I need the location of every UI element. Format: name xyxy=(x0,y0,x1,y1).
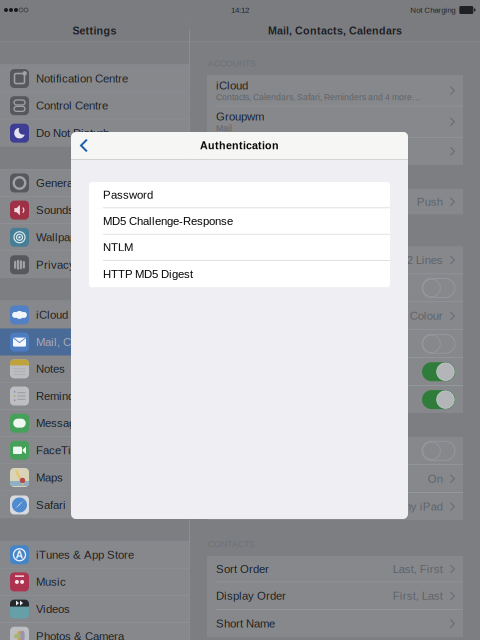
staticText: MAIL xyxy=(208,230,228,239)
button[interactable]: Wallpapers & Brightness xyxy=(0,224,189,251)
staticText: iTunes & App Store xyxy=(36,548,134,561)
staticText: ACCOUNTS xyxy=(208,59,256,68)
button[interactable]: Groupwm xyxy=(207,106,463,137)
staticText: Safari xyxy=(36,499,66,511)
staticText: Mail, Contacts, Calendars xyxy=(36,336,164,348)
button[interactable]: Sounds xyxy=(0,197,189,224)
staticText: Short Name xyxy=(216,617,275,630)
staticText: Sort Order xyxy=(216,563,269,575)
staticText: Contacts, Calendars, Safari, Reminders a… xyxy=(216,92,421,102)
button[interactable]: A xyxy=(0,541,189,569)
button[interactable]: Sort Order xyxy=(207,556,463,582)
button[interactable]: Privacy xyxy=(0,251,189,278)
staticText: Sent from my iPad xyxy=(351,500,443,513)
staticText: Reminders xyxy=(36,390,90,402)
staticText: Music xyxy=(36,576,66,588)
staticText: Fetch New Data xyxy=(216,195,295,208)
button[interactable]: General xyxy=(0,170,189,197)
button[interactable]: Load Remote Images xyxy=(207,358,463,385)
staticText: Videos xyxy=(36,603,70,615)
staticText: Preview xyxy=(216,254,257,266)
staticText: Settings xyxy=(72,25,116,37)
button[interactable]: Do Not Disturb xyxy=(0,120,189,147)
staticText: NTLM xyxy=(103,241,133,254)
button[interactable]: Organise By Thread xyxy=(207,386,463,413)
button[interactable]: Messages xyxy=(0,410,189,437)
staticText: Notification Centre xyxy=(36,72,128,85)
button[interactable]: Increase Quote Level xyxy=(207,465,463,492)
staticText: Push xyxy=(417,195,443,208)
staticText: 2 Lines xyxy=(407,254,443,266)
button[interactable]: Short Name xyxy=(207,610,463,637)
button[interactable]: iCloud xyxy=(207,75,463,106)
staticText: Photos & Camera xyxy=(36,630,124,640)
button[interactable]: Display Order xyxy=(207,582,463,609)
staticText: Authentication xyxy=(200,139,279,151)
button[interactable]: Preview xyxy=(207,246,463,274)
button[interactable]: Show To/Cc Label xyxy=(207,274,463,302)
staticText: Privacy xyxy=(36,258,75,271)
staticText: Do Not Disturb xyxy=(36,127,109,139)
button[interactable]: Reminders xyxy=(0,383,189,410)
button[interactable]: NTLM xyxy=(89,235,390,261)
staticText: Password xyxy=(103,188,153,201)
button[interactable]: Add Account xyxy=(207,138,463,165)
button[interactable]: Safari xyxy=(0,491,189,518)
button[interactable]: HTTP MD5 Digest xyxy=(89,261,390,287)
button[interactable]: MD5 Challenge-Response xyxy=(89,208,390,235)
button[interactable]: Maps xyxy=(0,464,189,491)
button[interactable]: Mail, Contacts, Calendars xyxy=(0,328,189,356)
staticText: Mail, Contacts, Calendars xyxy=(268,25,402,37)
staticText: A xyxy=(15,549,23,561)
staticText: Notes xyxy=(36,362,65,375)
button[interactable]: Photos & Camera xyxy=(0,623,189,640)
button[interactable]: Notification Centre xyxy=(0,65,189,92)
button[interactable]: Back xyxy=(71,132,115,159)
staticText: First, Last xyxy=(393,590,443,602)
staticText: Display Order xyxy=(216,590,286,602)
staticText: Last, First xyxy=(393,563,443,575)
staticText: Maps xyxy=(36,471,63,484)
button[interactable]: Control Centre xyxy=(0,92,189,120)
staticText: CONTACTS xyxy=(208,539,255,549)
staticText: General xyxy=(36,177,76,189)
button[interactable]: FaceTime xyxy=(0,437,189,464)
staticText: MD5 Challenge-Response xyxy=(103,215,233,227)
button[interactable]: Signature xyxy=(207,493,463,520)
staticText: 14:12 xyxy=(231,5,249,14)
staticText: HTTP MD5 Digest xyxy=(103,268,193,280)
staticText: Sounds xyxy=(36,204,74,216)
button[interactable]: Flag Style xyxy=(207,302,463,329)
button[interactable]: Ask Before Deleting xyxy=(207,330,463,357)
staticText: Messages xyxy=(36,417,87,429)
button[interactable]: Music xyxy=(0,569,189,596)
button[interactable]: Notes xyxy=(0,356,189,383)
staticText: Colour xyxy=(410,310,443,322)
button[interactable]: iCloud xyxy=(0,301,189,328)
staticText: Wallpapers & Brightness xyxy=(36,231,160,244)
staticText: iCloud xyxy=(36,309,68,321)
staticText: Add Account xyxy=(216,145,280,158)
staticText: On xyxy=(428,472,443,485)
staticText: Groupwm xyxy=(216,110,264,123)
button[interactable]: Videos xyxy=(0,596,189,623)
button[interactable]: Always Bcc Myself xyxy=(207,437,463,464)
staticText: Show To/Cc Label xyxy=(216,282,306,294)
staticText: FaceTime xyxy=(36,444,86,457)
button[interactable]: Fetch New Data xyxy=(207,189,463,214)
staticText: iCloud xyxy=(216,79,248,92)
button[interactable]: Password xyxy=(89,182,390,208)
staticText: Not Charging xyxy=(410,5,455,14)
staticText: Mail xyxy=(216,123,232,133)
staticText: Control Centre xyxy=(36,99,108,112)
